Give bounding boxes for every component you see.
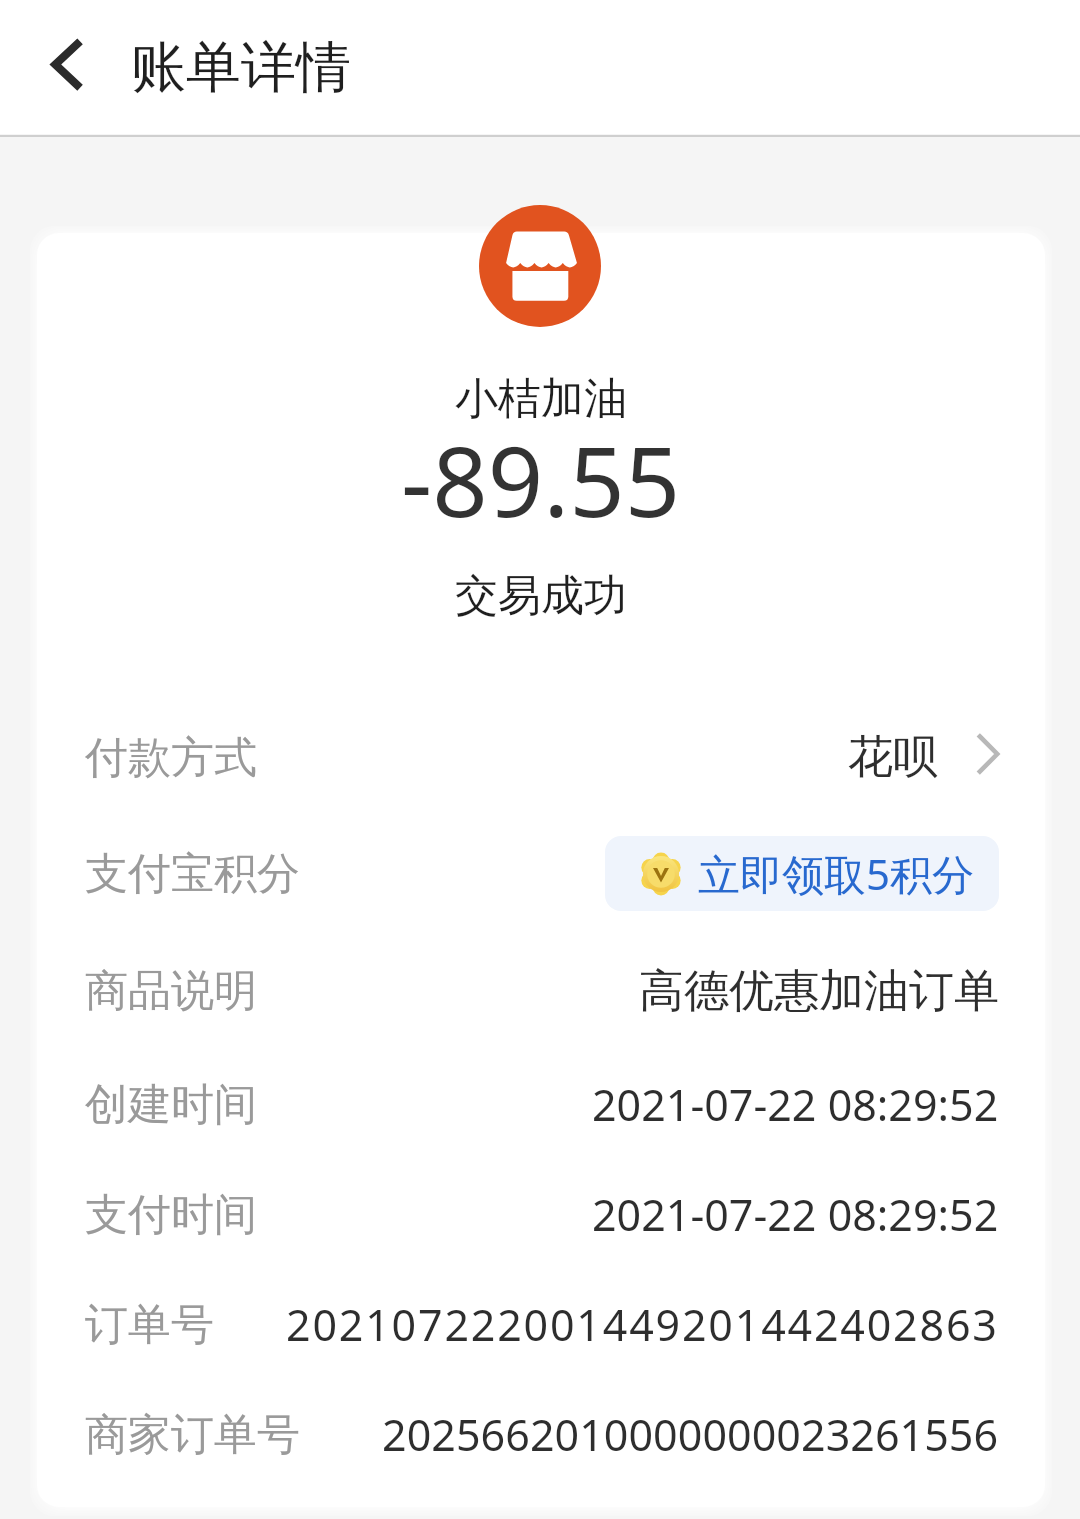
staticText: 付款方式 <box>85 731 257 785</box>
button[interactable]: 订单号 <box>37 1271 1045 1378</box>
other: Open payment method <box>977 734 999 774</box>
staticText: 立即领取5积分 <box>698 845 975 902</box>
staticText: 账单详情 <box>131 33 351 102</box>
staticText: 支付时间 <box>85 1188 257 1242</box>
staticText: 订单号 <box>85 1298 214 1352</box>
button[interactable]: 支付宝积分 <box>37 816 1045 931</box>
staticText: 202107222001449201442402863 <box>286 1295 999 1354</box>
staticText: 2021-07-22 08:29:52 <box>592 1185 999 1244</box>
button[interactable]: 付款方式 <box>37 699 1045 816</box>
staticText: 高德优惠加油订单 <box>639 963 999 1020</box>
staticText: 2021-07-22 08:29:52 <box>592 1075 999 1134</box>
button[interactable]: 商家订单号 <box>37 1378 1045 1491</box>
staticText: 支付宝积分 <box>85 847 300 901</box>
staticText: 2025662010000000023261556 <box>382 1405 999 1464</box>
staticText: 商家订单号 <box>85 1408 300 1462</box>
button[interactable]: 支付时间 <box>37 1158 1045 1271</box>
button[interactable]: 创建时间 <box>37 1051 1045 1158</box>
staticText: 交易成功 <box>455 569 627 623</box>
staticText: -89.55 <box>401 413 681 545</box>
staticText: 小桔加油 <box>455 372 627 426</box>
staticText: 花呗 <box>848 729 938 786</box>
staticText: 商品说明 <box>85 964 257 1018</box>
button[interactable]: Back <box>20 20 110 110</box>
button[interactable]: 商品说明 <box>37 931 1045 1051</box>
button[interactable]: 立即领取5积分 <box>605 836 999 911</box>
staticText: 创建时间 <box>85 1078 257 1132</box>
